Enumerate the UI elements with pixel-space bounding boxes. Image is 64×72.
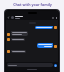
button[interactable]: Back	[7, 16, 10, 19]
button[interactable]: More options	[55, 17, 57, 19]
button[interactable]	[35, 26, 53, 29]
button[interactable]	[11, 38, 25, 41]
button[interactable]	[7, 63, 53, 67]
button[interactable]	[11, 50, 26, 53]
staticText: and friends	[22, 8, 43, 13]
button[interactable]	[37, 43, 53, 48]
button[interactable]: Send	[54, 64, 57, 67]
staticText: Chat with your family	[13, 2, 52, 7]
button[interactable]	[11, 31, 28, 36]
